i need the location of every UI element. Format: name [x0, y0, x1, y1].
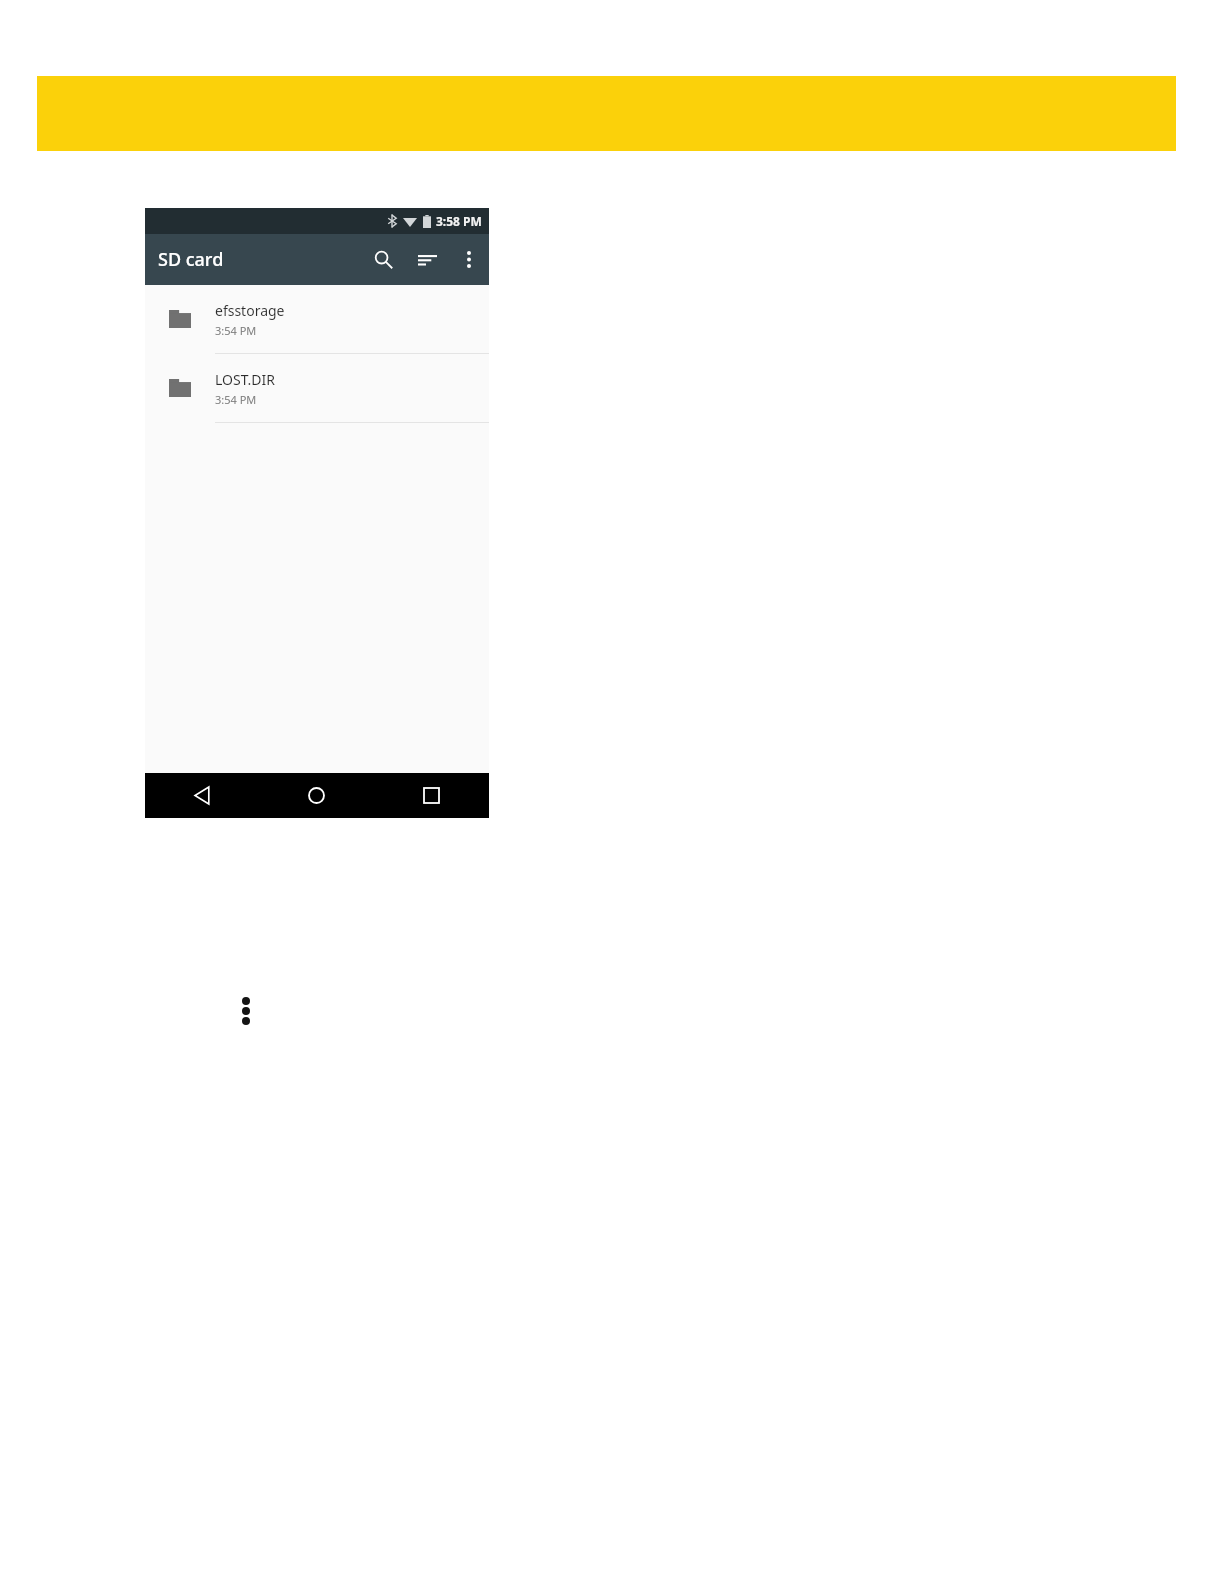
button[interactable]: Home — [259, 773, 374, 818]
staticText: 3:54 PM — [215, 323, 257, 338]
staticText: 3:54 PM — [215, 392, 257, 407]
staticText: efsstorage — [215, 301, 285, 320]
button[interactable]: Search — [361, 234, 405, 285]
button[interactable]: Back — [145, 773, 259, 818]
staticText: 3:58 PM — [436, 213, 482, 229]
button[interactable]: More options — [232, 992, 260, 1032]
staticText: SD card — [158, 247, 224, 272]
button[interactable]: Recent apps — [374, 773, 489, 818]
button[interactable]: LOST.DIR — [145, 354, 489, 422]
button[interactable]: More options — [449, 234, 489, 285]
button[interactable]: efsstorage — [145, 285, 489, 353]
button[interactable]: Sort — [405, 234, 449, 285]
staticText: LOST.DIR — [215, 370, 276, 389]
